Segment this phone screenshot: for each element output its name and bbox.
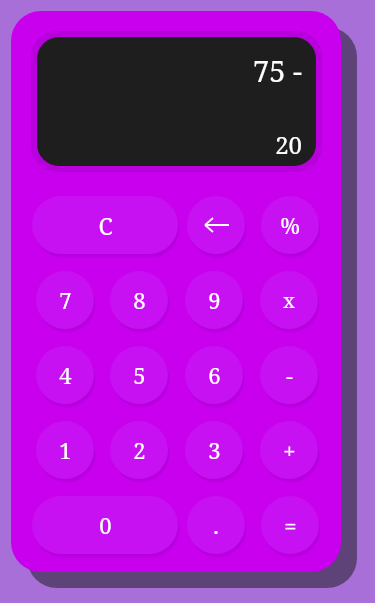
button[interactable]: 6 [185,346,243,404]
button[interactable]: 4 [36,346,94,404]
button[interactable]: 5 [110,346,168,404]
button[interactable]: Backspace [187,196,245,254]
button[interactable]: 1 [36,421,94,479]
button[interactable]: . [187,496,245,554]
button[interactable]: 2 [110,421,168,479]
button[interactable]: 8 [110,271,168,329]
staticText: 7 [59,285,72,315]
staticText: x [283,287,295,314]
staticText: - [286,360,293,390]
staticText: 3 [208,435,221,465]
button[interactable]: C [32,196,178,254]
button[interactable]: + [260,421,318,479]
staticText: 20 [275,128,302,156]
staticText: 9 [208,285,221,315]
staticText: C [98,210,113,241]
staticText: 6 [208,360,221,390]
staticText: 4 [59,360,72,390]
staticText: 8 [133,285,146,315]
staticText: 1 [59,435,72,465]
button[interactable]: 3 [185,421,243,479]
button[interactable]: 0 [32,496,178,554]
staticText: + [283,435,296,465]
staticText: 75 - [253,51,302,90]
staticText: 2 [133,435,146,465]
staticText: . [213,510,219,540]
button[interactable]: 7 [36,271,94,329]
staticText: 5 [133,360,146,390]
staticText: 0 [99,510,112,540]
button[interactable]: = [261,496,319,554]
button[interactable]: % [261,196,319,254]
button[interactable]: x [260,271,318,329]
staticText: % [280,210,300,240]
button[interactable]: 9 [185,271,243,329]
staticText: = [284,510,297,540]
button[interactable]: - [260,346,318,404]
